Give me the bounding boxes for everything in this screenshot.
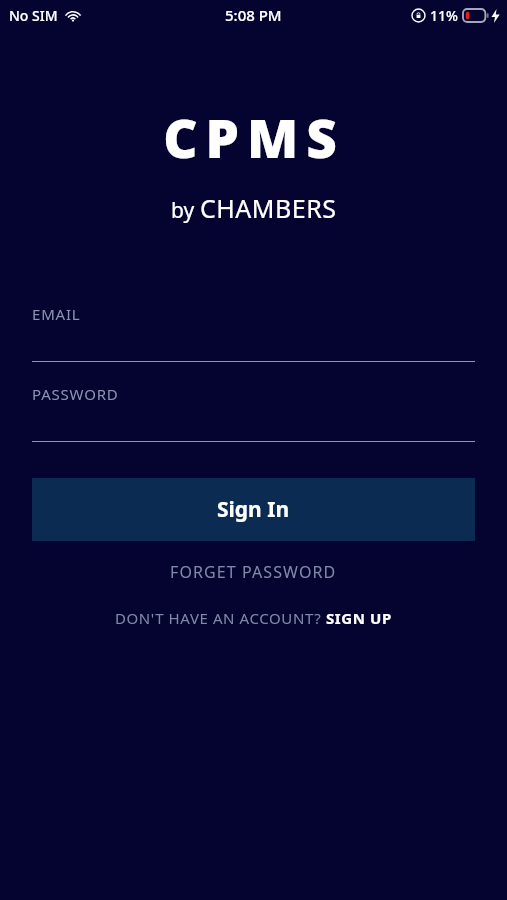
staticText: by — [171, 196, 200, 225]
button[interactable]: Sign In — [32, 478, 475, 541]
staticText: PASSWORD — [32, 384, 119, 404]
staticText: DON'T HAVE AN ACCOUNT? — [115, 608, 326, 628]
staticText: No SIM — [9, 6, 58, 25]
button[interactable]: FORGET PASSWORD — [158, 555, 349, 589]
staticText: FORGET PASSWORD — [170, 561, 337, 583]
staticText: CHAMBERS — [200, 191, 337, 225]
staticText: Sign In — [217, 495, 290, 524]
staticText: 11% — [430, 6, 458, 25]
staticText: CPMS — [163, 101, 345, 173]
staticText: EMAIL — [32, 304, 81, 324]
button[interactable]: PASSWORD — [32, 384, 475, 442]
button[interactable]: DON'T HAVE AN ACCOUNT? — [105, 603, 402, 633]
staticText: 5:08 PM — [225, 5, 282, 25]
button[interactable]: EMAIL — [32, 304, 475, 362]
staticText: SIGN UP — [326, 608, 392, 628]
